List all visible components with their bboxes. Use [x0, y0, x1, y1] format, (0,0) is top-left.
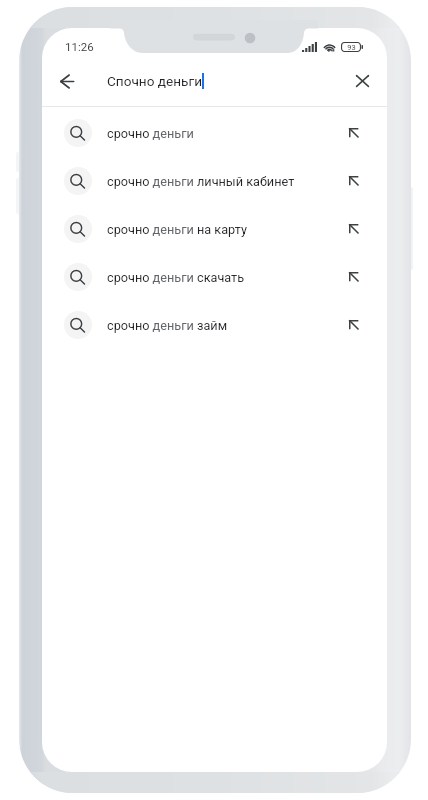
button[interactable]: срочно деньги [42, 109, 387, 157]
button[interactable]: Back [44, 58, 90, 104]
staticText: 11:26 [65, 40, 94, 53]
button[interactable]: Clear search [340, 59, 384, 103]
staticText: срочно деньги займ [107, 318, 228, 333]
button[interactable]: Use suggestion [342, 313, 366, 337]
staticText: срочно деньги скачать [107, 270, 245, 285]
staticText: срочно деньги личный кабинет [107, 174, 295, 189]
button[interactable]: Use suggestion [342, 265, 366, 289]
button[interactable]: Use suggestion [342, 217, 366, 241]
button[interactable]: срочно деньги на карту [42, 205, 387, 253]
button[interactable]: Use suggestion [342, 121, 366, 145]
button[interactable]: срочно деньги скачать [42, 253, 387, 301]
staticText: срочно деньги [107, 126, 194, 141]
button[interactable]: Use suggestion [342, 169, 366, 193]
staticText: срочно деньги на карту [107, 222, 247, 237]
button[interactable]: срочно деньги займ [42, 301, 387, 349]
staticText: Спочно деньги [107, 73, 202, 89]
button[interactable]: срочно деньги личный кабинет [42, 157, 387, 205]
staticText: 93 [347, 43, 356, 52]
